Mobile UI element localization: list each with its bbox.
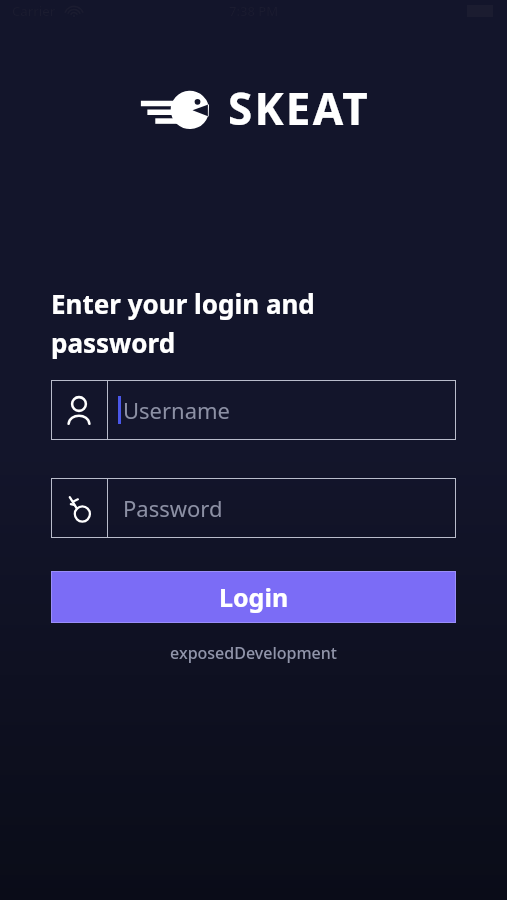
- staticText: SKEAT: [228, 78, 370, 138]
- button[interactable]: Password: [51, 478, 456, 538]
- staticText: Login: [219, 580, 289, 614]
- staticText: exposedDevelopment: [0, 642, 507, 664]
- other: Skeat logo: [138, 84, 210, 132]
- staticText: Password: [123, 493, 223, 523]
- staticText: Username: [123, 395, 231, 425]
- button[interactable]: Username: [51, 380, 456, 440]
- button[interactable]: Login: [51, 571, 456, 623]
- staticText: Enter your login and password: [51, 286, 315, 361]
